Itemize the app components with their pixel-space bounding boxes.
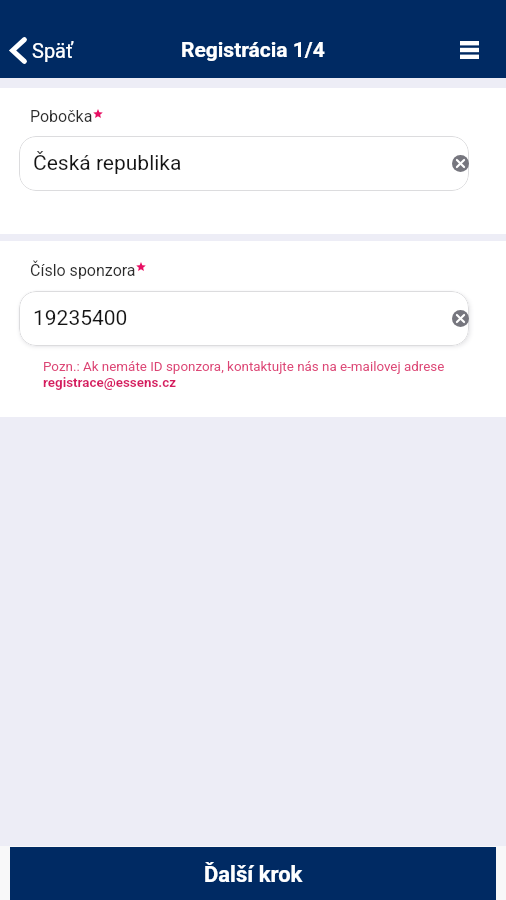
staticText: Ďalší krok bbox=[204, 862, 303, 888]
button[interactable]: Clear bbox=[452, 155, 469, 172]
button[interactable]: Clear bbox=[452, 310, 469, 327]
button[interactable]: Ďalší krok bbox=[10, 847, 496, 900]
staticText: 19235400 bbox=[33, 306, 128, 331]
staticText: Číslo sponzora bbox=[30, 261, 136, 280]
staticText: Registrácia 1/4 bbox=[181, 38, 325, 63]
button[interactable]: 19235400 bbox=[19, 291, 469, 346]
button[interactable]: Späť bbox=[10, 24, 73, 76]
staticText: registrace@essens.cz bbox=[43, 375, 176, 391]
staticText: Česká republika bbox=[33, 151, 182, 176]
button[interactable]: Česká republika bbox=[19, 136, 469, 191]
button[interactable]: Menu bbox=[450, 31, 488, 69]
staticText: Späť bbox=[32, 39, 73, 62]
staticText: Pozn.: Ak nemáte ID sponzora, kontaktujt… bbox=[43, 359, 445, 375]
staticText: Pobočka bbox=[30, 107, 93, 126]
